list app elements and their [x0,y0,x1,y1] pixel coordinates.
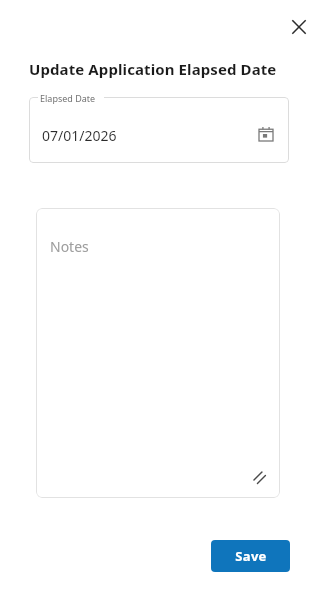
button[interactable]: Notes [36,208,280,498]
staticText: Notes [50,237,89,256]
button[interactable]: Save [211,540,290,572]
staticText: 07/01/2026 [42,126,117,145]
button[interactable]: Pick date [255,123,277,145]
staticText: Update Application Elapsed Date [29,59,277,79]
button[interactable]: 07/01/2026 [29,97,289,163]
button[interactable]: Close [286,14,312,40]
staticText: Elapsed Date [40,92,96,104]
staticText: Save [235,547,267,565]
